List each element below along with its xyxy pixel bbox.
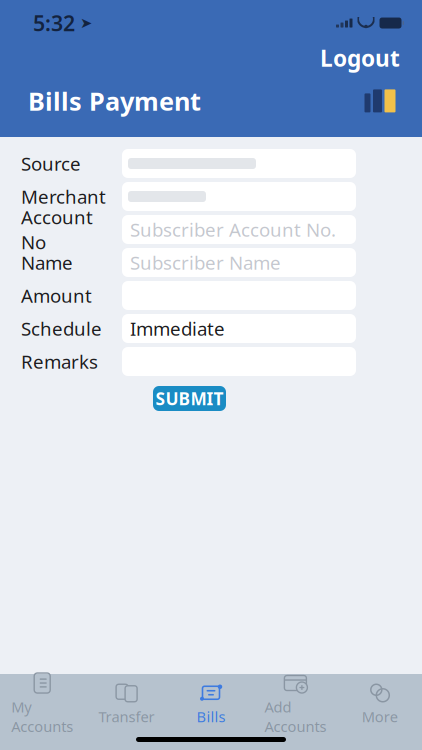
button[interactable]: Bills [169,682,253,726]
staticText: Bills [196,707,225,726]
button[interactable]: My Accounts [0,682,84,726]
staticText: Immediate [130,316,225,341]
staticText: Schedule [21,316,102,341]
staticText: Bills Payment [28,84,201,118]
staticText: 5:32 [33,9,75,37]
staticText: SUBMIT [155,387,223,410]
staticText: More [362,707,398,726]
button[interactable]: Transfer [84,682,169,726]
staticText: ➤ [80,15,92,31]
button[interactable]: Add Accounts [253,682,338,726]
button[interactable]: More [338,682,422,726]
staticText: Logout [320,43,400,73]
staticText: Source [21,151,81,176]
staticText: Subscriber Name [130,250,281,275]
staticText: My Accounts [11,697,73,736]
staticText: Account No [21,205,93,254]
staticText: Name [21,250,73,275]
button[interactable]: Logout [314,40,406,76]
staticText: Remarks [21,349,98,374]
button[interactable]: SUBMIT [153,386,226,411]
staticText: Transfer [99,707,155,726]
staticText: Merchant [21,184,106,209]
staticText: Amount [21,283,92,308]
staticText: Add Accounts [264,697,326,736]
staticText: Subscriber Account No. [130,217,336,242]
